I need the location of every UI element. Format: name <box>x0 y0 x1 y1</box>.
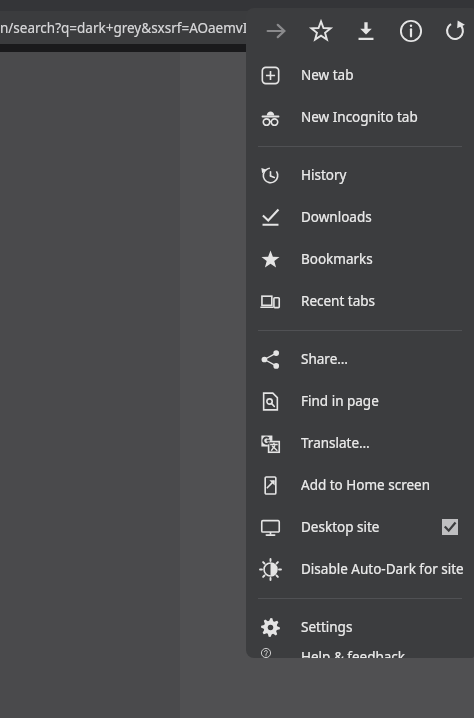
button[interactable]: Page info <box>391 11 431 51</box>
button[interactable]: Settings <box>246 606 474 648</box>
button[interactable]: New Incognito tab <box>246 96 474 138</box>
staticText: Desktop site <box>301 518 442 536</box>
staticText: Add to Home screen <box>301 476 474 494</box>
staticText: Recent tabs <box>301 292 474 310</box>
staticText: Find in page <box>301 392 474 410</box>
staticText: History <box>301 166 474 184</box>
staticText: Share… <box>301 350 474 368</box>
button[interactable]: Find in page <box>246 380 474 422</box>
button[interactable]: Reload <box>435 11 474 51</box>
staticText: Disable Auto-Dark for site <box>301 560 474 578</box>
button[interactable]: Forward <box>256 11 296 51</box>
button[interactable]: Bookmarks <box>246 238 474 280</box>
button[interactable]: New tab <box>246 54 474 96</box>
button[interactable]: History <box>246 154 474 196</box>
button[interactable]: Share… <box>246 338 474 380</box>
staticText: Downloads <box>301 208 474 226</box>
button[interactable]: Translate… <box>246 422 474 464</box>
button[interactable]: Help & feedback <box>246 648 474 658</box>
button[interactable]: Download page <box>346 11 386 51</box>
button[interactable]: Add to Home screen <box>246 464 474 506</box>
staticText: New tab <box>301 66 474 84</box>
button[interactable]: Bookmark this page <box>301 11 341 51</box>
button[interactable]: n/search?q=dark+grey&sxsrf=AOaemvIG˙ <box>0 11 474 44</box>
staticText: Help & feedback <box>301 648 474 658</box>
staticText: Settings <box>301 618 474 636</box>
button[interactable]: Disable Auto-Dark for site <box>246 548 474 590</box>
staticText: n/search?q=dark+grey&sxsrf=AOaemvIG˙ <box>0 19 260 37</box>
staticText: Bookmarks <box>301 250 474 268</box>
button[interactable]: Desktop site <box>246 506 474 548</box>
button[interactable]: Downloads <box>246 196 474 238</box>
staticText: Translate… <box>301 434 474 452</box>
staticText: New Incognito tab <box>301 108 474 126</box>
button[interactable]: Recent tabs <box>246 280 474 322</box>
